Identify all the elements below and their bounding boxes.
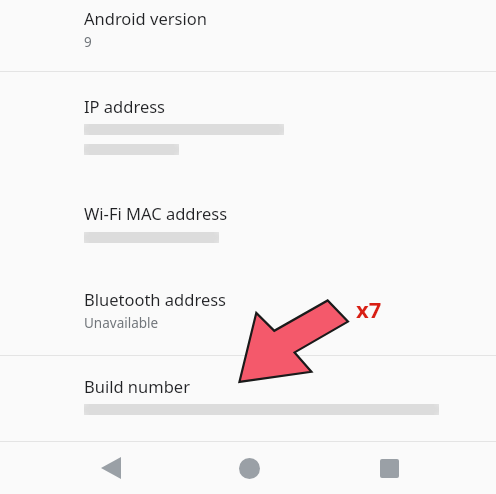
button[interactable]: Home bbox=[217, 442, 281, 494]
staticText: Unavailable bbox=[84, 314, 159, 332]
button[interactable]: Recent apps bbox=[357, 442, 421, 494]
staticText: Build number bbox=[84, 375, 190, 397]
staticText: Wi-Fi MAC address bbox=[84, 202, 228, 224]
staticText: Android version bbox=[84, 7, 207, 29]
staticText: IP address bbox=[84, 95, 166, 117]
staticText: x7 bbox=[356, 294, 382, 324]
button[interactable]: Wi-Fi MAC address bbox=[0, 182, 496, 272]
button[interactable]: Android version bbox=[0, 0, 496, 71]
button[interactable]: Back bbox=[79, 442, 143, 494]
button[interactable]: IP address bbox=[0, 72, 496, 182]
staticText: 9 bbox=[84, 33, 92, 51]
button[interactable]: Build number bbox=[0, 356, 496, 434]
staticText: Bluetooth address bbox=[84, 288, 226, 310]
button[interactable]: Bluetooth address bbox=[0, 275, 496, 355]
